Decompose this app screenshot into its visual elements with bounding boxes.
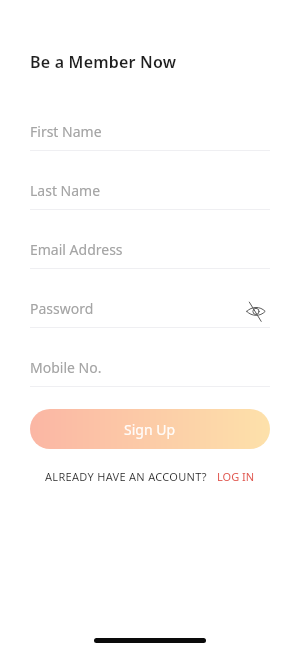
button[interactable]: Password: [30, 269, 270, 328]
button[interactable]: Sign Up: [30, 409, 270, 449]
staticText: Last Name: [30, 181, 101, 200]
staticText: First Name: [30, 122, 102, 141]
button[interactable]: LOG IN: [211, 464, 256, 489]
button[interactable]: Mobile No.: [30, 328, 270, 387]
staticText: Sign Up: [124, 420, 176, 439]
staticText: Mobile No.: [30, 358, 102, 377]
staticText: Email Address: [30, 240, 123, 259]
button[interactable]: Email Address: [30, 210, 270, 269]
staticText: LOG IN: [217, 469, 255, 484]
staticText: Be a Member Now: [30, 51, 177, 73]
staticText: ALREADY HAVE AN ACCOUNT?: [45, 469, 207, 484]
button[interactable]: First Name: [30, 92, 270, 151]
staticText: Password: [30, 299, 94, 318]
button[interactable]: Last Name: [30, 151, 270, 210]
button[interactable]: Show password: [241, 294, 273, 326]
